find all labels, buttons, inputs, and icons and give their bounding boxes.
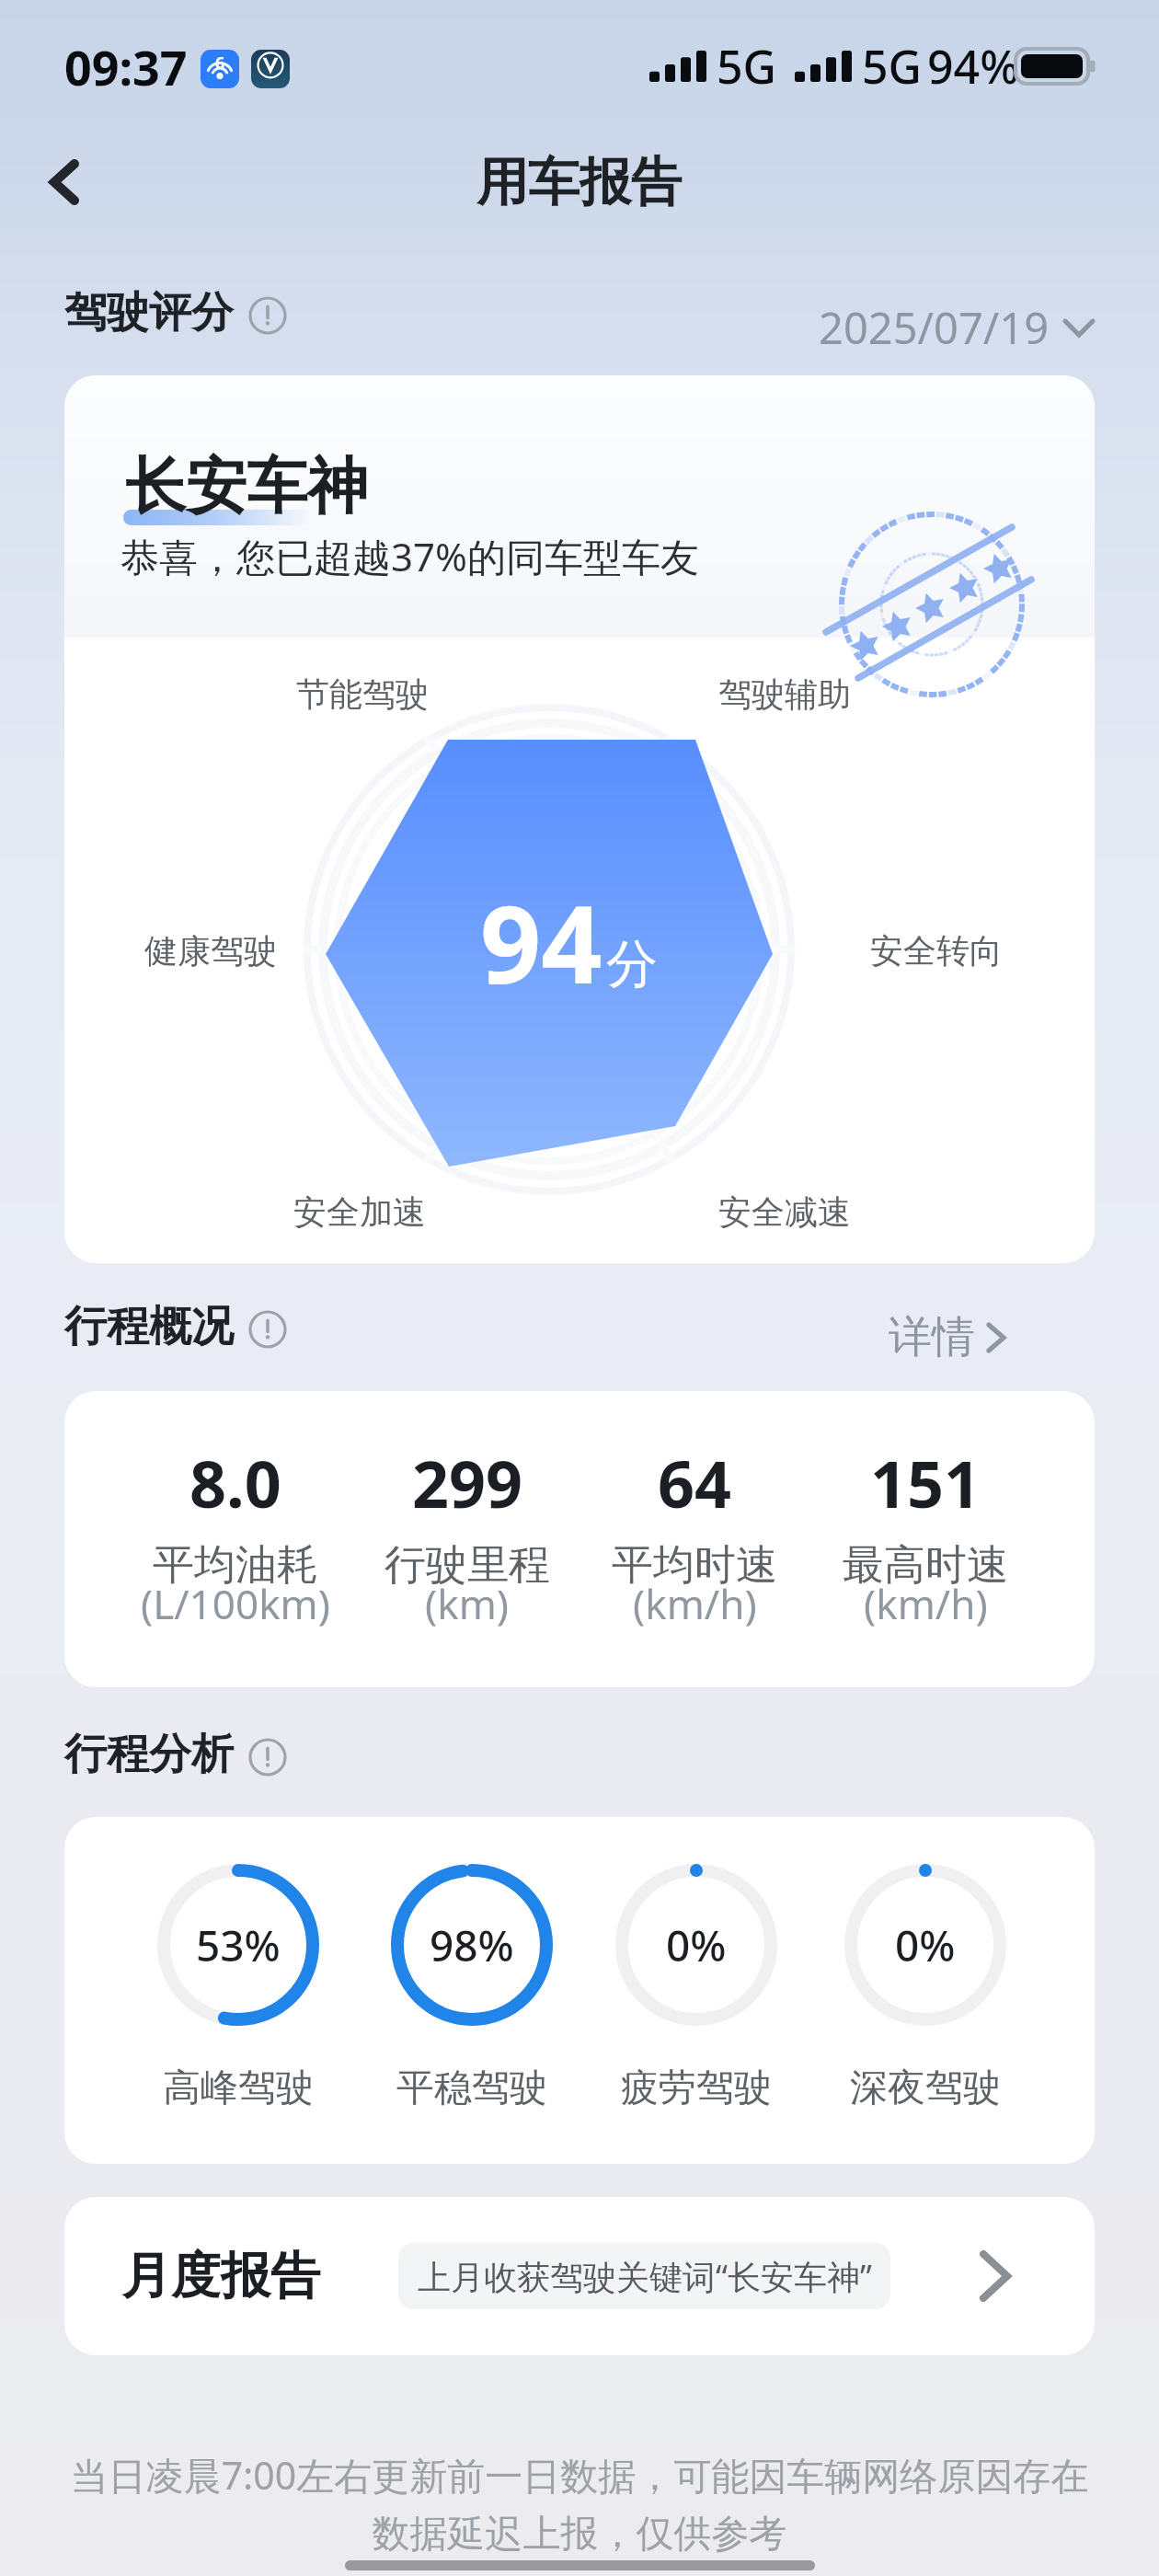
staticText: 94% [927, 35, 1019, 98]
staticText: (km/h) [864, 1576, 988, 1631]
staticText: 疲劳驾驶 [621, 2064, 772, 2112]
staticText: (km/h) [633, 1576, 757, 1631]
button[interactable]: 2025/07/19 [813, 293, 1101, 362]
button[interactable]: 长安车神 [64, 375, 1095, 1263]
staticText: 安全减速 [718, 1191, 851, 1233]
button[interactable]: 53% [64, 1817, 1095, 2164]
staticText: 高峰驾驶 [163, 2064, 314, 2112]
staticText: 平均时速 [612, 1539, 777, 1592]
staticText: 健康驾驶 [144, 930, 277, 972]
staticText: 行程分析 [64, 1728, 234, 1781]
staticText: 53% [196, 1916, 281, 1974]
staticText: 151 [870, 1439, 981, 1526]
button[interactable]: 返回 [20, 138, 109, 226]
staticText: 平稳驾驶 [396, 2064, 547, 2112]
staticText: 恭喜，您已超越37%的同车型车友 [120, 530, 699, 582]
staticText: 平均油耗 [153, 1539, 318, 1592]
staticText: 最高时速 [843, 1539, 1008, 1592]
staticText: 64 [658, 1439, 732, 1526]
staticText: 安全转向 [870, 930, 1003, 972]
staticText: 月度报告 [121, 2245, 320, 2307]
staticText: 09:37 [64, 34, 188, 99]
staticText: 5G [717, 35, 776, 98]
staticText: 6 [215, 52, 225, 75]
staticText: 上月收获驾驶关键词“长安车神” [406, 2254, 884, 2299]
staticText: 行程概况 [64, 1300, 234, 1353]
staticText: (km) [425, 1576, 510, 1631]
staticText: 长安车神 [125, 448, 368, 524]
staticText: 驾驶评分 [64, 286, 234, 339]
button[interactable]: 月度报告 [64, 2197, 1095, 2355]
staticText: 深夜驾驶 [850, 2064, 1001, 2112]
staticText: 8.0 [189, 1439, 281, 1526]
staticText: 0% [895, 1916, 956, 1974]
staticText: 5G [862, 35, 922, 98]
button[interactable]: 详情 [883, 1305, 1012, 1370]
staticText: 驾驶辅助 [718, 673, 851, 715]
staticText: 安全加速 [293, 1191, 426, 1233]
staticText: 分 [606, 932, 658, 997]
staticText: 当日凌晨7:00左右更新前一日数据，可能因车辆网络原因存在 数据延迟上报，仅供参… [37, 2449, 1122, 2558]
staticText: 行驶里程 [384, 1539, 550, 1592]
staticText: 详情 [889, 1310, 975, 1364]
staticText: 2025/07/19 [819, 298, 1050, 357]
staticText: 98% [430, 1916, 514, 1974]
staticText: (L/100km) [141, 1576, 330, 1631]
staticText: 94 [480, 869, 602, 1015]
staticText: 0% [666, 1916, 727, 1974]
button[interactable]: 8.0 [64, 1391, 1095, 1687]
staticText: 299 [412, 1439, 523, 1526]
staticText: 节能驾驶 [296, 673, 429, 715]
staticText: 用车报告 [476, 150, 683, 215]
